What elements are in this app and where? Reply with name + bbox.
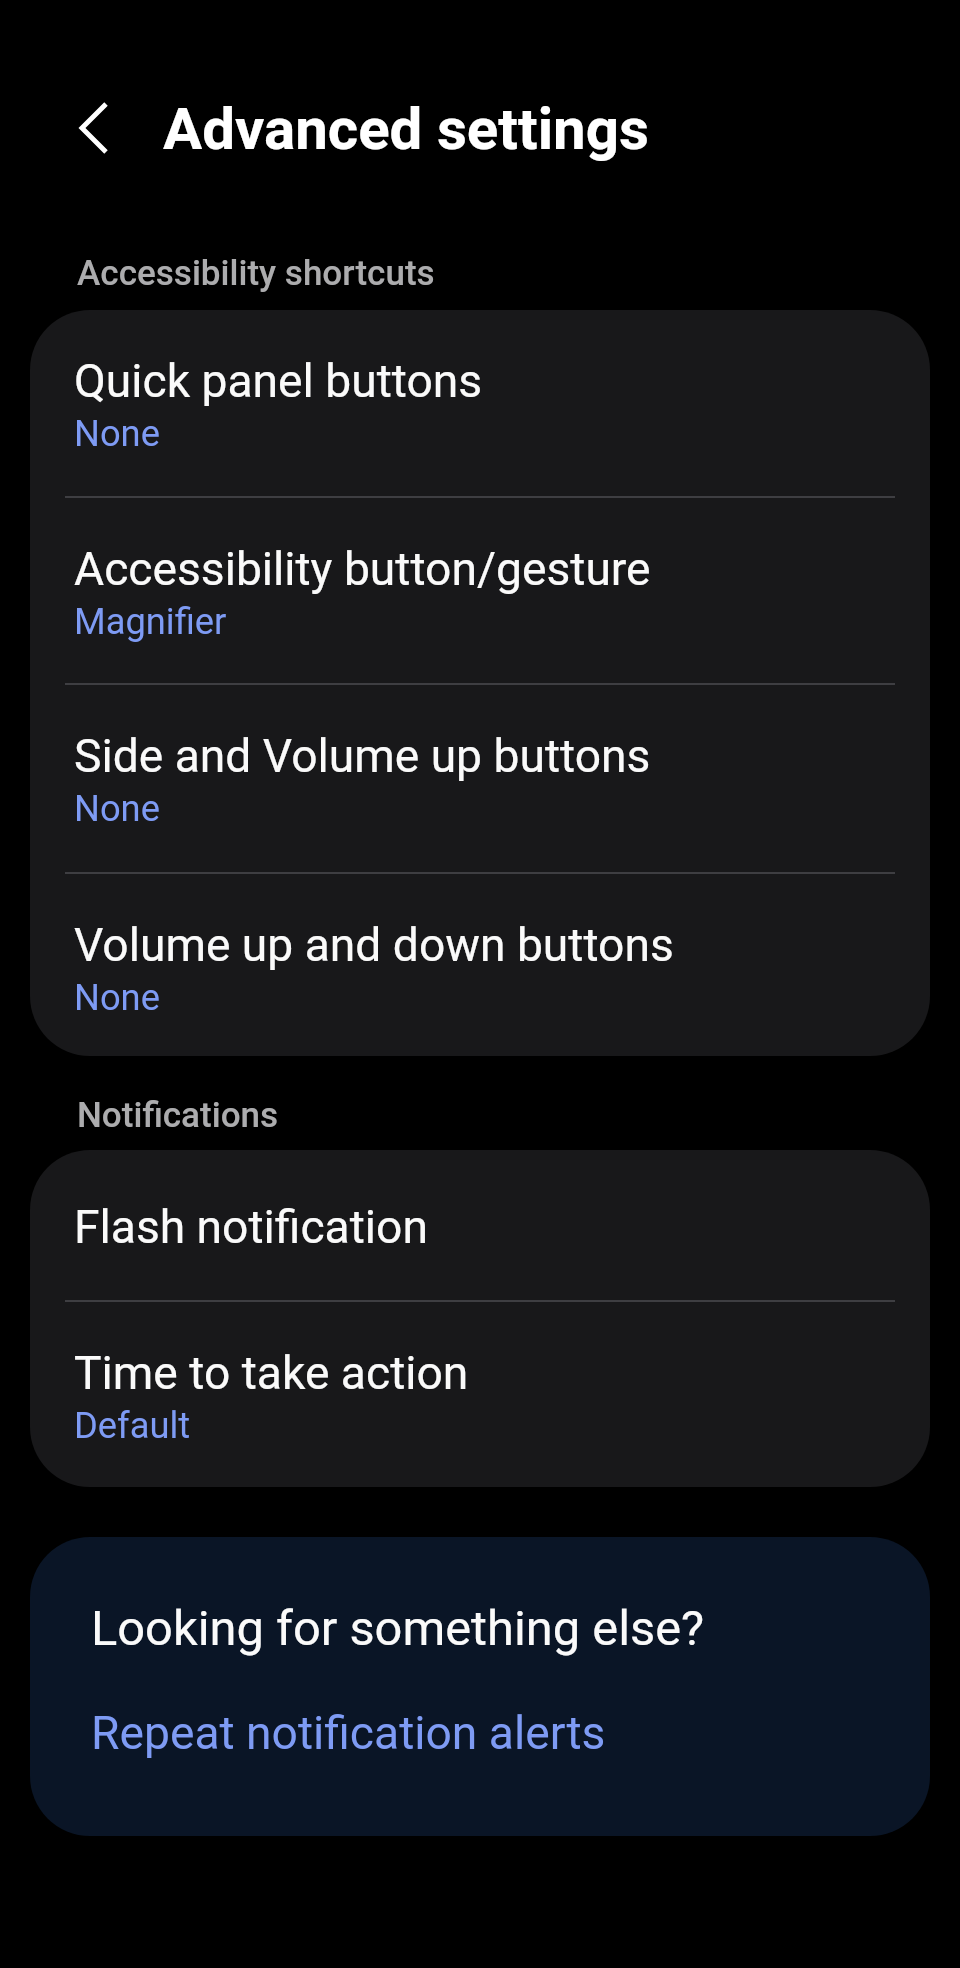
staticText: Volume up and down buttons [74,918,674,972]
staticText: Accessibility shortcuts [77,253,435,294]
button[interactable]: Side and Volume up buttons [30,685,930,874]
staticText: None [74,976,160,1019]
button[interactable]: Flash notification [30,1150,930,1302]
button[interactable]: Accessibility button/gesture [30,498,930,685]
staticText: Repeat notification alerts [91,1706,606,1760]
staticText: None [74,412,160,455]
staticText: Accessibility button/gesture [74,542,651,596]
staticText: Flash notification [74,1200,428,1254]
staticText: Looking for something else? [91,1600,705,1657]
staticText: Side and Volume up buttons [74,729,651,783]
staticText: Time to take action [74,1346,469,1400]
staticText: Magnifier [74,600,227,643]
staticText: Quick panel buttons [74,354,483,408]
staticText: None [74,787,160,830]
button[interactable]: Time to take action [30,1302,930,1487]
staticText: Default [74,1404,191,1447]
button[interactable]: Looking for something else? [30,1537,930,1836]
staticText: Advanced settings [163,95,649,163]
button[interactable]: Volume up and down buttons [30,874,930,1056]
button[interactable]: Quick panel buttons [30,310,930,498]
button[interactable]: Navigate back [45,80,141,176]
staticText: Notifications [77,1095,279,1136]
